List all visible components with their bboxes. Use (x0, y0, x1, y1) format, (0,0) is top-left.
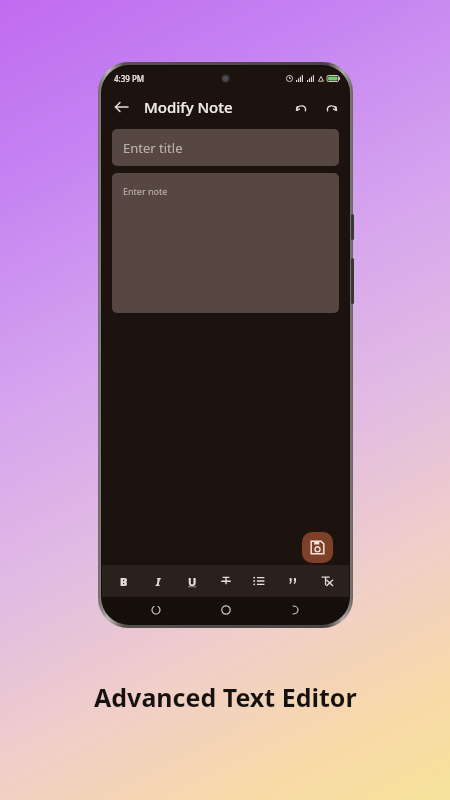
button[interactable]: Enter title (112, 129, 339, 166)
staticText: Modify Note (144, 97, 233, 117)
button[interactable]: Back (280, 597, 310, 623)
button[interactable]: Recents (141, 597, 171, 623)
button[interactable]: Italic (145, 567, 171, 595)
button[interactable]: Bold (111, 567, 137, 595)
staticText: B (120, 574, 128, 589)
button[interactable]: Redo (321, 97, 341, 117)
staticText: Advanced Text Editor (94, 680, 357, 714)
button[interactable]: Home (211, 597, 241, 623)
button[interactable]: Undo (291, 97, 311, 117)
staticText: Enter note (123, 185, 168, 197)
button[interactable]: Clear formatting (314, 567, 340, 595)
staticText: I (156, 574, 161, 589)
button[interactable]: Save note (302, 532, 333, 563)
button[interactable]: Strikethrough (213, 567, 239, 595)
button[interactable]: Underline (179, 567, 205, 595)
staticText: Enter title (123, 139, 183, 157)
staticText: 4:39 PM (114, 73, 145, 84)
staticText: U (188, 574, 197, 589)
button[interactable]: Quote (280, 567, 306, 595)
button[interactable]: Enter note (112, 173, 339, 313)
button[interactable]: Back (108, 94, 134, 120)
button[interactable]: Bulleted list (246, 567, 272, 595)
